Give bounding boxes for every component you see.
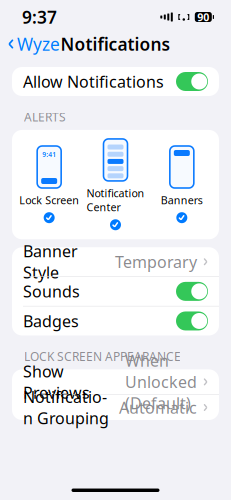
button[interactable]: Notification Grouping: [12, 395, 219, 420]
staticText: 90: [197, 10, 209, 24]
staticText: 9:41: [42, 150, 56, 159]
button[interactable]: Wyze: [0, 28, 66, 59]
staticText: Notifications: [60, 32, 170, 55]
staticText: Allow Notifications: [23, 71, 164, 92]
staticText: Notification Grouping: [23, 386, 109, 429]
staticText: Automatic: [119, 397, 197, 418]
staticText: Show Previews: [23, 361, 90, 403]
button[interactable]: Lock Screen: [16, 146, 82, 223]
staticText: Badges: [23, 310, 79, 331]
staticText: Banner Style: [23, 240, 78, 283]
staticText: Lock Screen: [19, 193, 79, 207]
button[interactable]: Banner Style: [12, 247, 219, 276]
staticText: Wyze: [17, 32, 60, 55]
staticText: LOCK SCREEN APPEARANCE: [24, 348, 181, 364]
staticText: Sounds: [23, 281, 80, 302]
button[interactable]: Allow Notifications: [12, 67, 219, 96]
button[interactable]: Sounds: [12, 277, 219, 306]
button[interactable]: Notification Center: [82, 139, 149, 230]
button[interactable]: Banners: [149, 146, 215, 223]
staticText: Banners: [161, 193, 203, 207]
staticText: When Unlocked (Default): [125, 350, 197, 414]
staticText: 9:37: [22, 5, 57, 28]
staticText: ALERTS: [24, 109, 66, 125]
staticText: Notification Center: [86, 186, 144, 214]
button[interactable]: Show Previews: [12, 369, 219, 394]
button[interactable]: Badges: [12, 306, 219, 335]
staticText: Temporary: [115, 251, 197, 272]
